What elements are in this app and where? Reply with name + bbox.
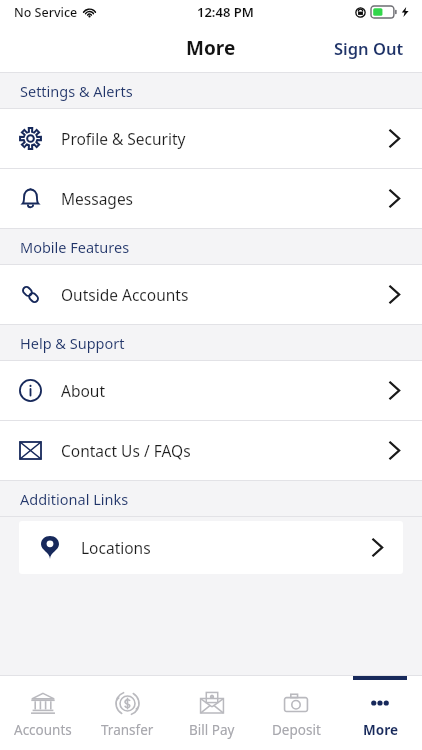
staticText: More — [186, 35, 236, 61]
staticText: Accounts — [14, 721, 72, 739]
staticText: No Service — [14, 4, 78, 21]
staticText: About — [61, 380, 389, 401]
button[interactable]: Deposit — [254, 676, 338, 750]
staticText: Deposit — [272, 721, 321, 739]
staticText: More — [363, 721, 398, 739]
staticText: Contact Us / FAQs — [61, 440, 389, 461]
staticText: Mobile Features — [20, 237, 130, 257]
staticText: Bill Pay — [189, 721, 235, 739]
button[interactable]: Sign Out — [330, 31, 408, 65]
staticText: Outside Accounts — [61, 284, 389, 305]
button[interactable]: Transfer — [85, 676, 170, 750]
staticText: Additional Links — [20, 489, 129, 509]
button[interactable]: Accounts — [0, 676, 85, 750]
staticText: Messages — [61, 188, 389, 209]
button[interactable]: Messages — [0, 169, 422, 228]
staticText: Settings & Alerts — [20, 81, 133, 101]
button[interactable]: Contact Us / FAQs — [0, 421, 422, 480]
button[interactable]: Profile & Security — [0, 109, 422, 168]
button[interactable]: Bill Pay — [170, 676, 254, 750]
button[interactable]: Locations — [19, 521, 403, 574]
staticText: Profile & Security — [61, 128, 389, 149]
button[interactable]: About — [0, 361, 422, 420]
staticText: Transfer — [101, 721, 154, 739]
staticText: Locations — [81, 537, 372, 558]
staticText: Sign Out — [334, 37, 404, 59]
staticText: Help & Support — [20, 333, 125, 353]
button[interactable]: More — [338, 676, 422, 750]
button[interactable]: Outside Accounts — [0, 265, 422, 324]
staticText: 12:48 PM — [197, 3, 254, 21]
